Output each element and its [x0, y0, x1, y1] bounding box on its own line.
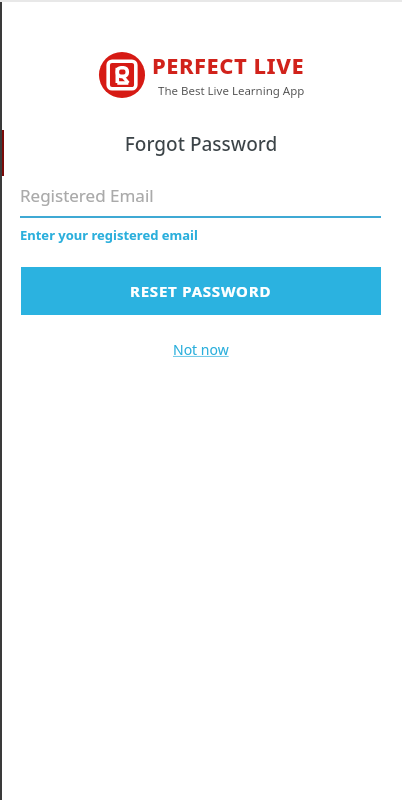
button[interactable]: RESET PASSWORD — [21, 267, 381, 315]
button[interactable]: Registered Email — [20, 184, 381, 218]
other: Perfect Live logo — [98, 51, 146, 99]
button[interactable]: Not now — [163, 337, 239, 362]
staticText: Enter your registered email — [20, 226, 198, 244]
staticText: PERFECT LIVE — [152, 50, 305, 80]
staticText: Forgot Password — [0, 131, 402, 157]
staticText: Registered Email — [20, 184, 154, 207]
staticText: The Best Live Learning App — [158, 83, 305, 99]
staticText: Not now — [173, 340, 229, 359]
staticText: RESET PASSWORD — [130, 281, 272, 301]
